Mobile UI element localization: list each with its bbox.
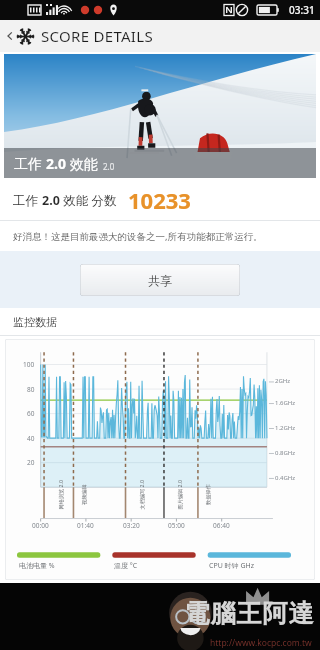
staticText: 共享 (148, 273, 172, 288)
staticText: 效能 分数 (60, 192, 117, 209)
staticText: CPU 时钟 GHz (209, 561, 254, 571)
staticText: 00:00 (32, 521, 49, 530)
staticText: 100 (23, 360, 35, 369)
button[interactable]: Back (3, 22, 16, 50)
staticText: 效能 (66, 154, 98, 173)
staticText: 监控数据 (13, 315, 57, 329)
staticText: 40 (27, 434, 35, 443)
staticText: 60 (27, 409, 35, 418)
staticText: 网络浏览 2.0 (56, 479, 63, 509)
staticText: SCORE DETAILS (41, 26, 153, 46)
staticText: 温度 °C (114, 561, 138, 571)
staticText: http://www.kocpc.com.tw (210, 637, 312, 649)
staticText: 2.0 (42, 192, 60, 209)
staticText: 1.2GHz (275, 424, 296, 432)
staticText: 2.0 (103, 161, 115, 172)
staticText: 2.0 (46, 154, 66, 173)
staticText: 视频编辑 (81, 484, 88, 505)
staticText: 03:31 (289, 3, 315, 17)
staticText: 03:20 (123, 521, 140, 530)
staticText: 電腦王阿達 (184, 598, 314, 629)
staticText: 文档编写 2.0 (137, 479, 144, 509)
staticText: 数据操作 (205, 484, 212, 505)
button[interactable]: 共享 (80, 264, 240, 296)
staticText: 好消息！这是目前最强大的设备之一,所有功能都正常运行。 (13, 230, 263, 243)
staticText: 80 (27, 385, 35, 394)
staticText: 电池电量 % (19, 561, 55, 571)
staticText: 10233 (128, 185, 191, 215)
staticText: 0.4GHz (275, 474, 296, 482)
staticText: 2GHz (275, 377, 291, 385)
staticText: 01:40 (77, 521, 94, 530)
staticText: 工作 (14, 154, 46, 173)
staticText: 图片编辑 2.0 (175, 479, 182, 509)
staticText: 0.8GHz (275, 449, 296, 457)
staticText: 工作 (13, 192, 42, 209)
staticText: 05:00 (168, 521, 185, 530)
staticText: 1.6GHz (275, 399, 296, 407)
staticText: 06:40 (213, 521, 230, 530)
staticText: 20 (27, 458, 35, 467)
